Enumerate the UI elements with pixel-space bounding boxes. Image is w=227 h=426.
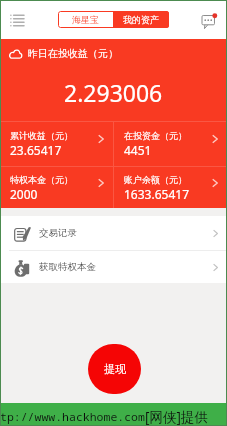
staticText: 累计收益（元） [10, 130, 73, 141]
button[interactable]: 账户余额（元） [114, 167, 227, 208]
staticText: 2000 [10, 186, 38, 202]
staticText: tp://www.hackhome.com [0, 409, 145, 425]
button[interactable]: 在投资金（元） [114, 122, 227, 166]
staticText: 1633.65417 [124, 186, 189, 202]
staticText: 交易记录 [39, 227, 77, 239]
staticText: 账户余额（元） [124, 174, 187, 185]
staticText: 4451 [124, 142, 152, 158]
button[interactable]: Menu [5, 8, 29, 32]
staticText: 海星宝 [72, 14, 99, 25]
button[interactable]: Messages [198, 8, 222, 32]
staticText: 2.293006 [64, 77, 163, 108]
staticText: [网侠]提供 [145, 408, 208, 426]
staticText: 昨日在投收益（元） [28, 47, 118, 60]
staticText: 提现 [104, 362, 126, 376]
button[interactable]: 特权本金（元） [0, 167, 113, 208]
button[interactable]: 累计收益（元） [0, 122, 113, 166]
staticText: 23.65417 [10, 142, 62, 158]
button[interactable]: 交易记录 [0, 216, 227, 250]
staticText: 我的资产 [123, 14, 159, 25]
staticText: 获取特权本金 [39, 261, 96, 273]
staticText: 在投资金（元） [124, 130, 187, 141]
button[interactable]: 海星宝 [58, 11, 113, 28]
button[interactable]: 提现 [88, 344, 141, 394]
staticText: 特权本金（元） [10, 174, 73, 185]
button[interactable]: 我的资产 [113, 11, 169, 28]
button[interactable]: 获取特权本金 [0, 251, 227, 283]
